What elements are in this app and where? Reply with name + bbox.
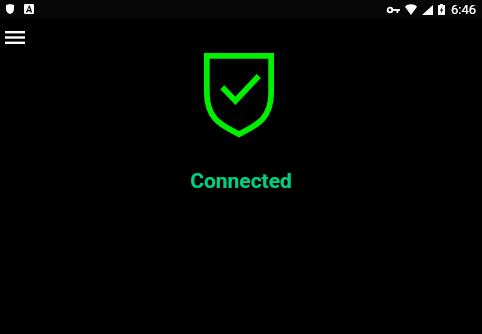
button[interactable]: Open navigation menu [0, 22, 29, 52]
button[interactable]: Connected [171, 53, 311, 194]
staticText: 6:46 [451, 2, 477, 17]
staticText: Connected [190, 169, 292, 194]
